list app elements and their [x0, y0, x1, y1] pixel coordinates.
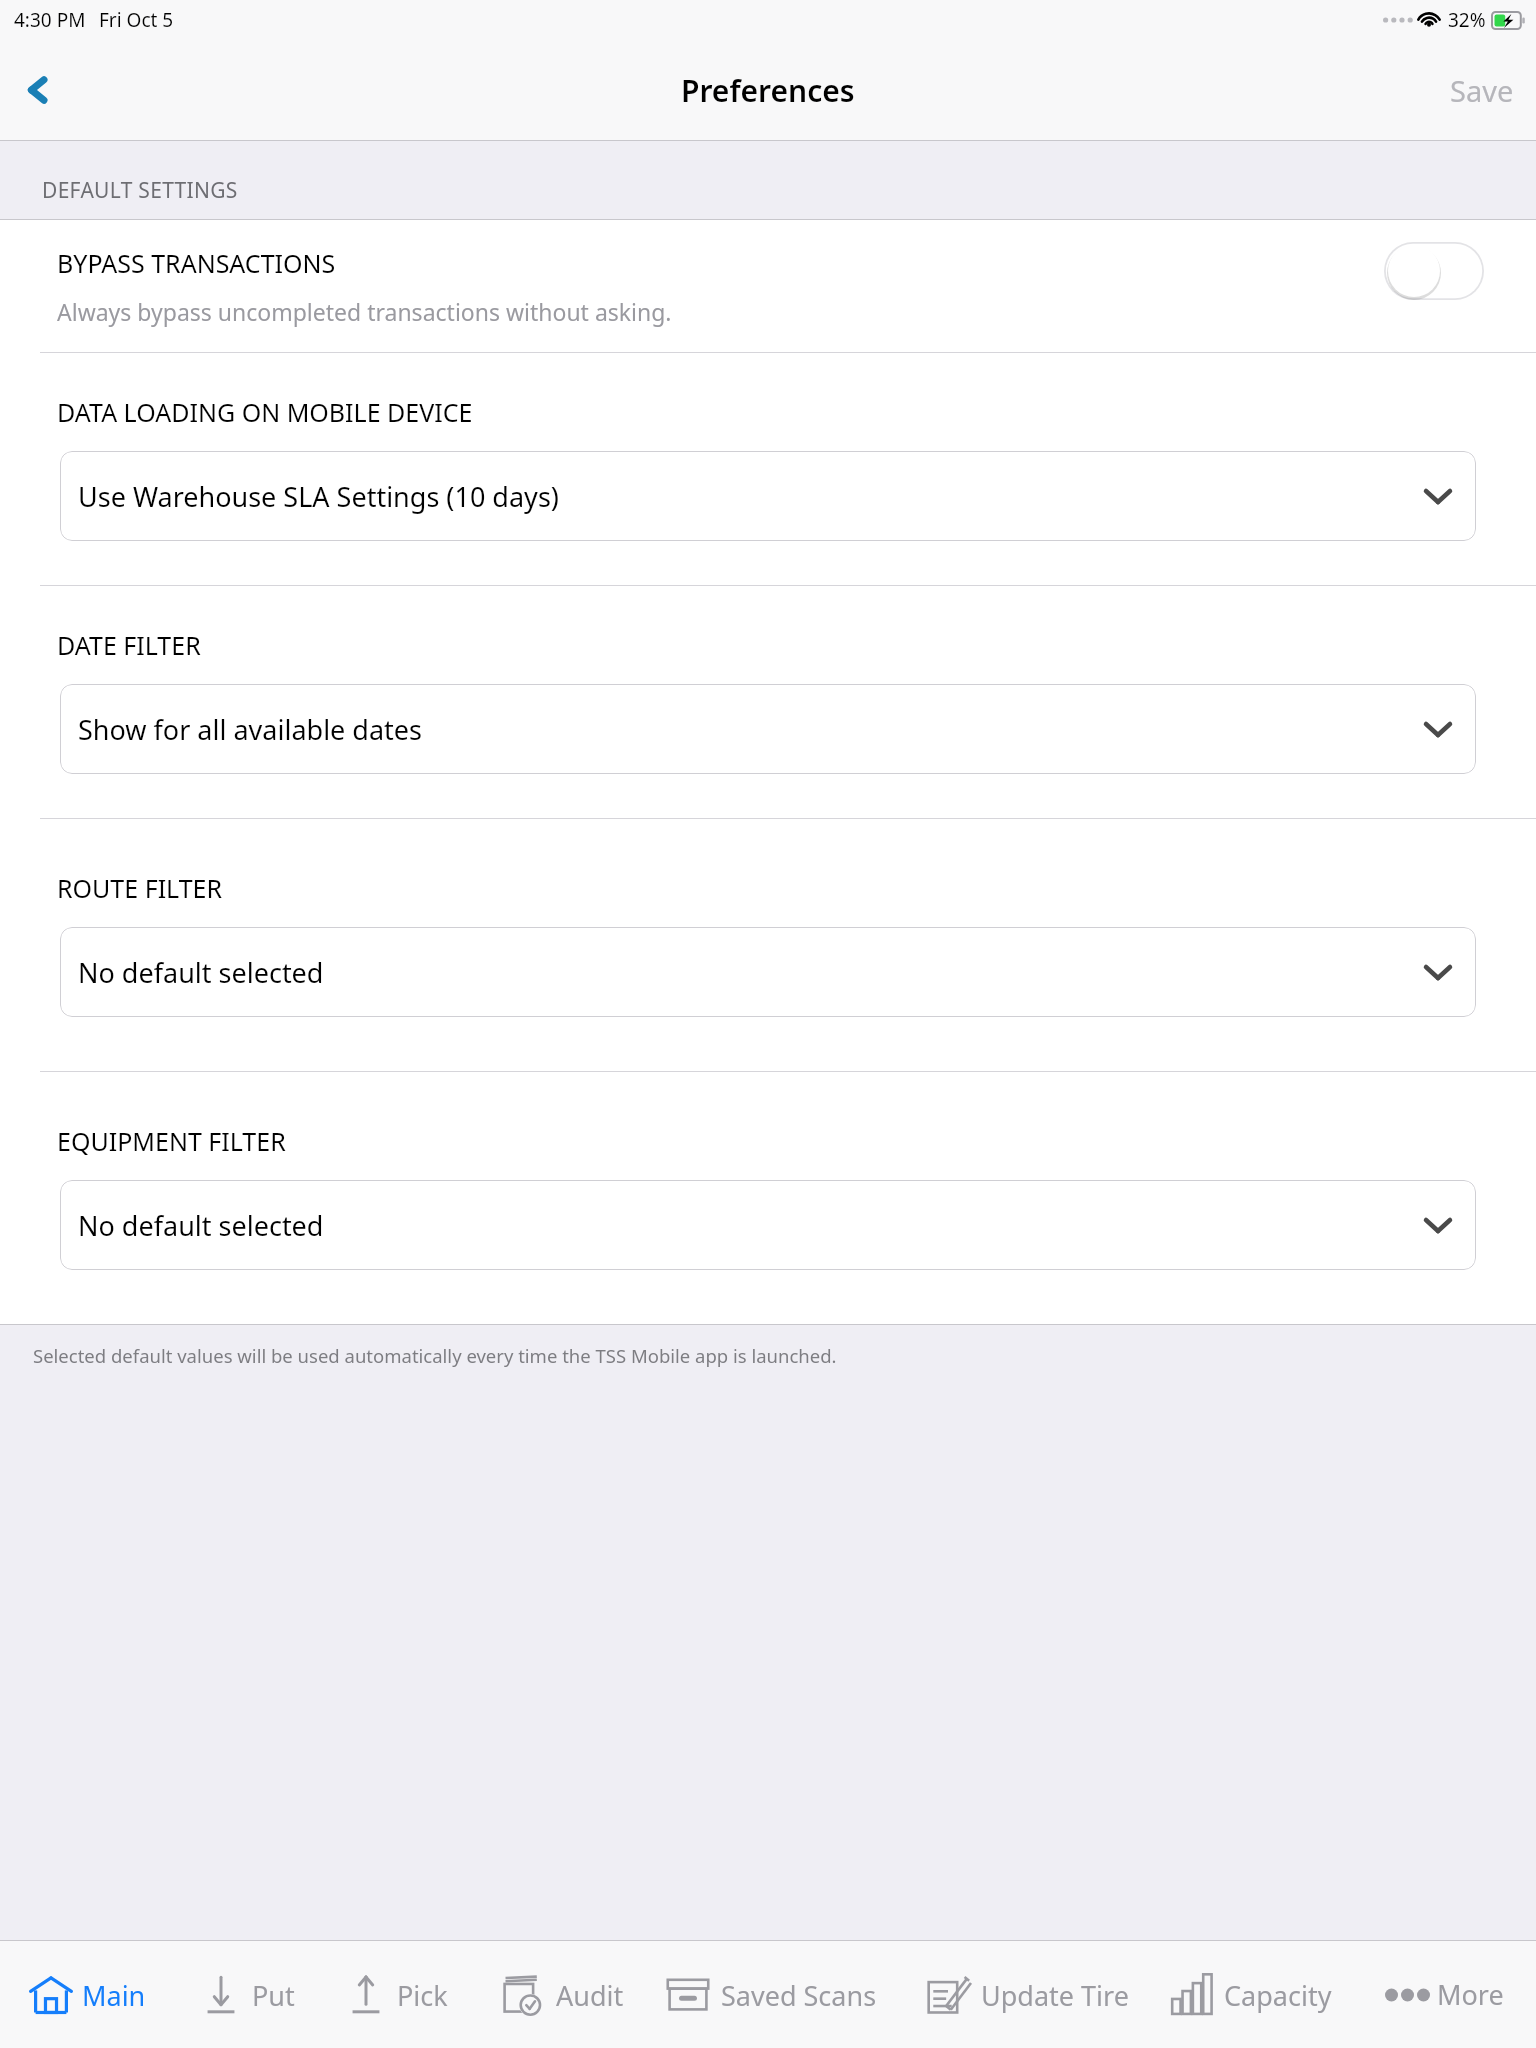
button[interactable]: No default selected	[60, 1180, 1476, 1270]
button[interactable]: Save	[1450, 71, 1514, 110]
staticText: Selected default values will be used aut…	[33, 1343, 837, 1368]
staticText: More	[1437, 1976, 1504, 2013]
staticText: Put	[252, 1977, 295, 2014]
staticText: Save	[1450, 71, 1514, 110]
staticText: DATE FILTER	[57, 628, 201, 662]
staticText: Main	[82, 1977, 146, 2014]
button[interactable]: Capacity	[1170, 1941, 1360, 2048]
staticText: No default selected	[78, 1207, 324, 1244]
button[interactable]: Main	[28, 1941, 158, 2048]
button[interactable]: Pick	[345, 1941, 460, 2048]
staticText: DATA LOADING ON MOBILE DEVICE	[57, 395, 473, 429]
button[interactable]: Put	[200, 1941, 310, 2048]
button[interactable]: More	[1385, 1941, 1530, 2048]
staticText: 32%	[1448, 7, 1486, 33]
staticText: No default selected	[78, 954, 324, 991]
staticText: Pick	[397, 1977, 448, 2014]
staticText: Update Tire	[981, 1977, 1129, 2014]
staticText: Fri Oct 5	[99, 7, 174, 33]
staticText: Always bypass uncompleted transactions w…	[57, 296, 672, 327]
staticText: EQUIPMENT FILTER	[57, 1124, 286, 1158]
button[interactable]: Audit	[500, 1941, 630, 2048]
button[interactable]: Saved Scans	[665, 1941, 890, 2048]
button[interactable]: BYPASS TRANSACTIONS	[0, 220, 1536, 352]
staticText: Use Warehouse SLA Settings (10 days)	[78, 478, 559, 515]
button[interactable]: Update Tire	[925, 1941, 1135, 2048]
button[interactable]: Show for all available dates	[60, 684, 1476, 774]
button[interactable]: Use Warehouse SLA Settings (10 days)	[60, 451, 1476, 541]
staticText: Capacity	[1224, 1977, 1332, 2014]
staticText: Audit	[556, 1977, 624, 2014]
staticText: DEFAULT SETTINGS	[42, 176, 238, 205]
staticText: Preferences	[681, 70, 855, 111]
staticText: BYPASS TRANSACTIONS	[57, 246, 336, 280]
staticText: 4:30 PM	[14, 7, 86, 33]
staticText: Show for all available dates	[78, 711, 423, 748]
button[interactable]: Bypass transactions toggle	[1384, 242, 1484, 300]
button[interactable]: No default selected	[60, 927, 1476, 1017]
staticText: ROUTE FILTER	[57, 871, 223, 905]
staticText: Saved Scans	[721, 1977, 877, 2014]
button[interactable]: Back	[8, 60, 68, 120]
